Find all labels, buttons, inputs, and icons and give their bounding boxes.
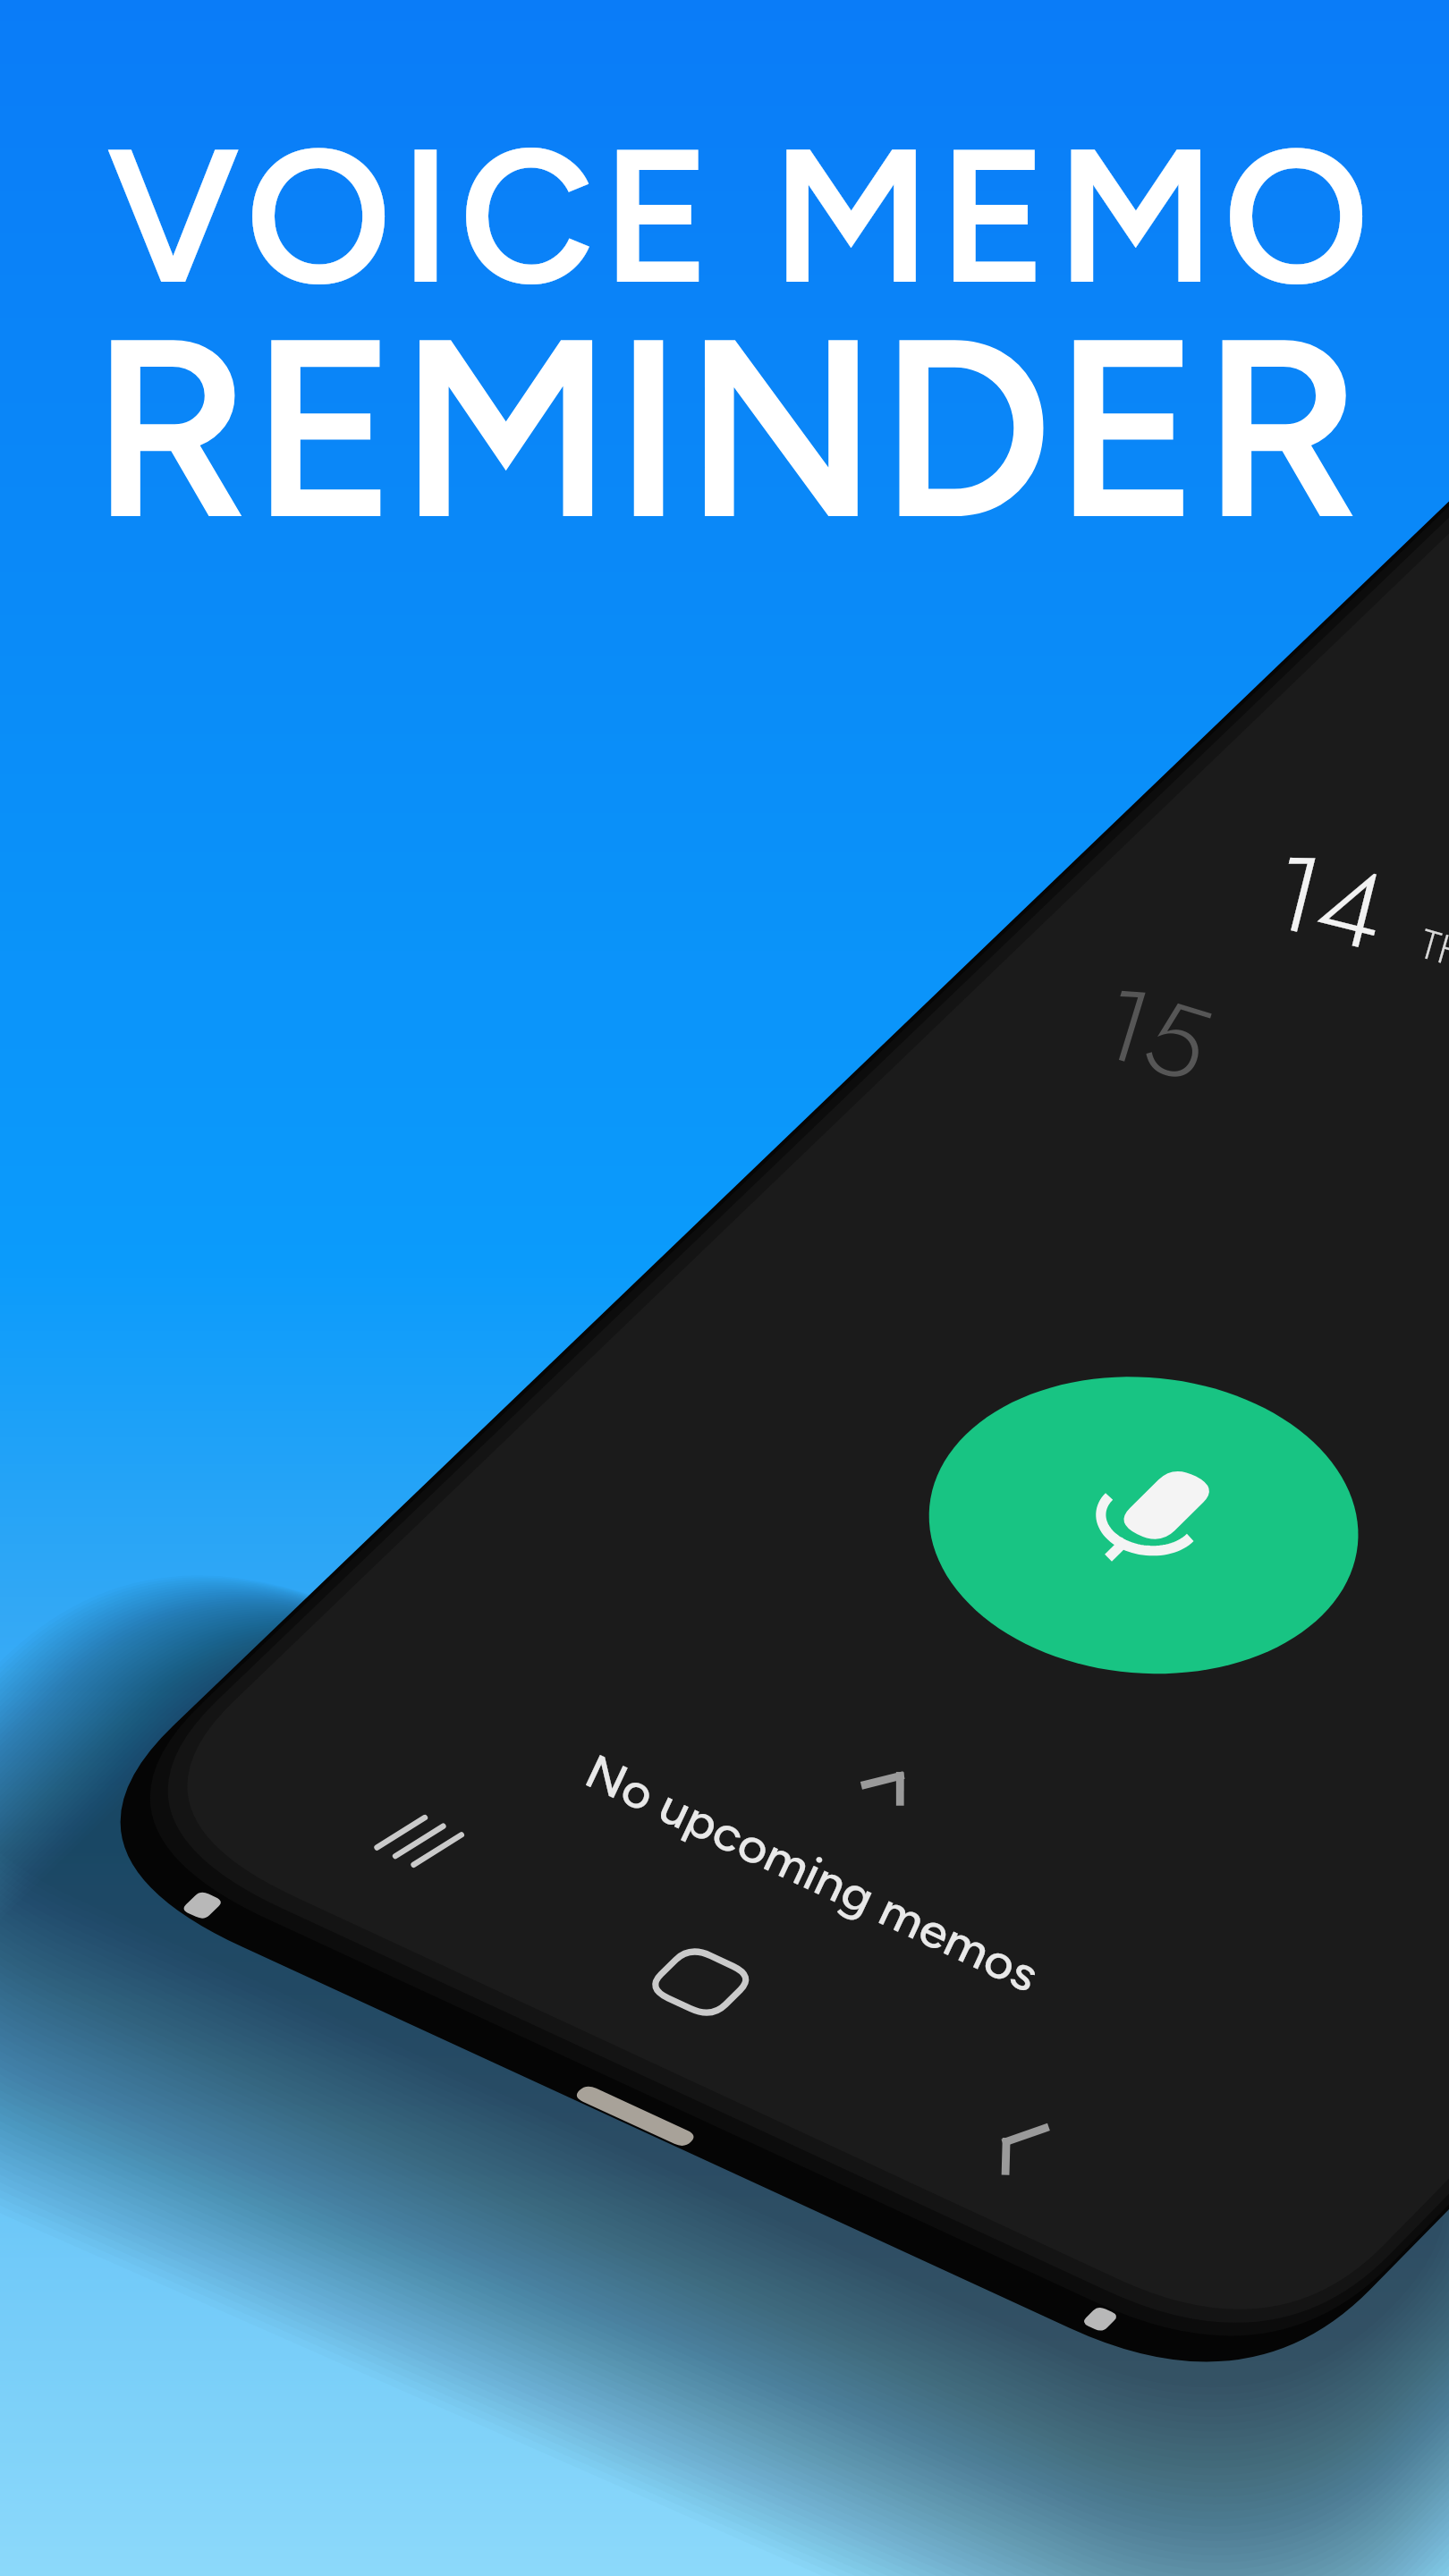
button[interactable]: Back (953, 2093, 1069, 2200)
staticText: No upcoming memos (577, 1742, 1048, 2004)
button[interactable]: Show upcoming memos (841, 1744, 939, 1834)
button[interactable]: Recent apps (358, 1784, 474, 1892)
staticText: REMINDER (90, 277, 1362, 579)
button[interactable]: Home (644, 1923, 760, 2039)
staticText: 15 (1082, 948, 1228, 1120)
staticText: 14 (1254, 812, 1402, 990)
button[interactable]: Record voice memo (931, 1373, 1358, 1677)
staticText: VOICE MEMO (106, 103, 1377, 328)
staticText: TH (1413, 914, 1449, 984)
